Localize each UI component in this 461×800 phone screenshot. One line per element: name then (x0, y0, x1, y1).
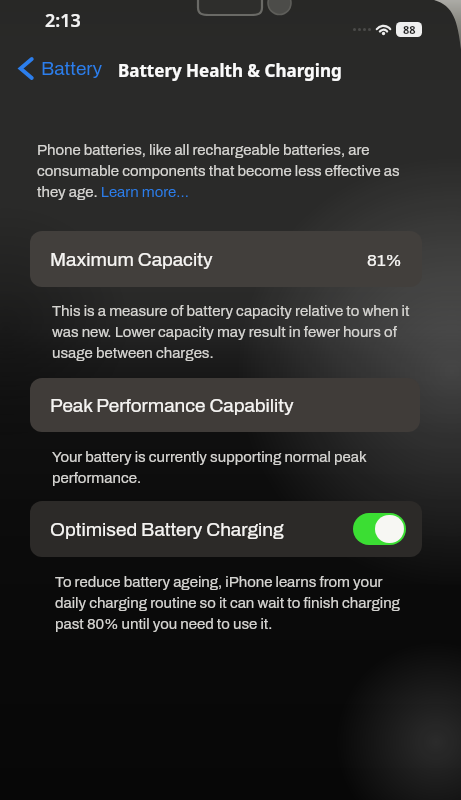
staticText: To reduce battery ageing, iPhone learns … (55, 574, 407, 632)
staticText: Optimised Battery Charging (50, 519, 284, 540)
staticText: 2:13 (45, 8, 81, 33)
button[interactable]: Maximum Capacity (30, 231, 422, 287)
staticText: Maximum Capacity (50, 249, 213, 270)
staticText: Your battery is currently supporting nor… (52, 449, 414, 486)
staticText: Battery Health & Charging (118, 59, 342, 82)
staticText: 88 (403, 22, 416, 37)
button[interactable]: Optimised Battery Charging toggle (353, 513, 406, 545)
staticText: Phone batteries, like all rechargeable b… (37, 142, 429, 200)
button[interactable]: Optimised Battery Charging (30, 501, 422, 557)
button[interactable]: Back to Battery (0, 51, 109, 85)
button[interactable]: Peak Performance Capability (30, 378, 420, 432)
staticText: Battery (41, 58, 103, 79)
staticText: 81% (367, 251, 402, 269)
staticText: This is a measure of battery capacity re… (52, 303, 414, 361)
staticText: Peak Performance Capability (50, 395, 294, 416)
